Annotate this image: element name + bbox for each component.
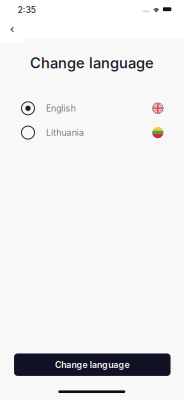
- staticText: Lithuania: [46, 127, 84, 138]
- button[interactable]: Back: [0, 16, 25, 42]
- staticText: 2:35: [18, 5, 36, 15]
- staticText: English: [46, 103, 76, 114]
- staticText: Change language: [55, 359, 129, 370]
- button[interactable]: Lithuania: [0, 121, 184, 145]
- button[interactable]: Change language: [14, 353, 170, 376]
- staticText: Change language: [30, 54, 154, 72]
- button[interactable]: English: [0, 96, 184, 120]
